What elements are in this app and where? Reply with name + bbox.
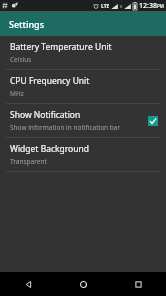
staticText: Widget Background — [10, 143, 89, 155]
button[interactable]: Back — [0, 272, 56, 296]
staticText: CPU Frequency Unit — [10, 75, 90, 87]
staticText: Show information in notification bar — [10, 123, 121, 132]
staticText: Battery Temperature Unit — [10, 41, 112, 53]
button[interactable]: CPU Frequency Unit — [0, 70, 166, 103]
other: Show Notification checkbox — [146, 114, 160, 128]
button[interactable]: Show Notification — [0, 104, 166, 137]
staticText: Show Notification — [10, 109, 81, 121]
button[interactable]: Widget Background — [0, 138, 166, 171]
button[interactable]: Battery Temperature Unit — [0, 36, 166, 69]
staticText: 0 — [120, 4, 123, 9]
staticText: Transparent — [10, 157, 47, 166]
staticText: 12:38 — [139, 1, 157, 11]
staticText: Celsius — [10, 55, 32, 64]
staticText: Settings — [9, 18, 45, 30]
button[interactable]: Home — [56, 272, 111, 296]
staticText: LTE — [101, 3, 110, 10]
button[interactable]: Recent apps — [111, 272, 166, 296]
staticText: PM — [157, 3, 164, 9]
staticText: MHz — [10, 89, 24, 98]
